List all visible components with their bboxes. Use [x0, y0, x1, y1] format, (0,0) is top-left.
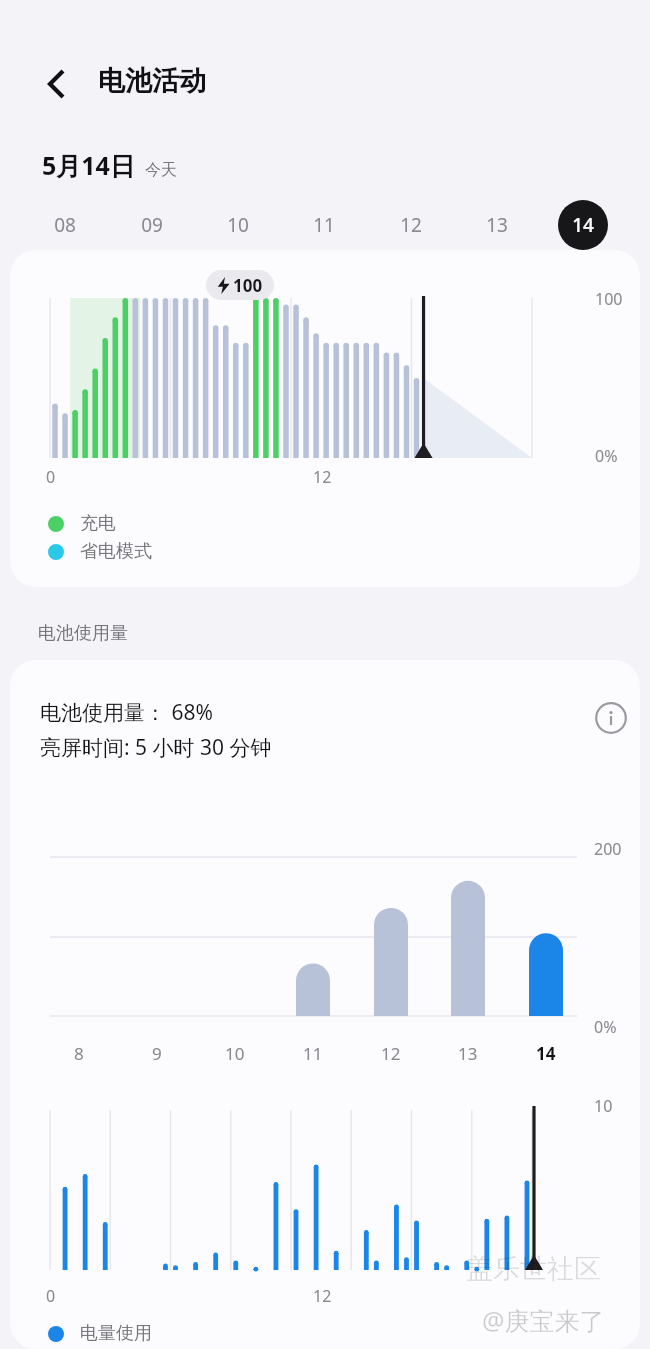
- staticText: 0%: [594, 1016, 617, 1038]
- staticText: 盖乐世社区: [466, 1252, 601, 1286]
- staticText: 电池活动: [98, 64, 206, 98]
- staticText: 省电模式: [80, 540, 152, 563]
- staticText: 100: [595, 288, 623, 310]
- staticText: 12: [313, 466, 332, 488]
- button[interactable]: 11: [299, 200, 349, 250]
- staticText: 10: [227, 212, 249, 238]
- button[interactable]: 14: [558, 200, 608, 250]
- staticText: 5月14日: [42, 148, 135, 182]
- staticText: 亮屏时间: 5 小时 30 分钟: [40, 733, 272, 762]
- staticText: 12: [313, 1285, 332, 1307]
- staticText: 0: [46, 466, 56, 488]
- staticText: 12: [381, 1042, 401, 1065]
- staticText: 14: [536, 1042, 556, 1065]
- button[interactable]: 100: [10, 250, 640, 587]
- button[interactable]: 13: [472, 200, 522, 250]
- staticText: 10: [594, 1095, 613, 1117]
- staticText: 200: [594, 838, 622, 860]
- staticText: 8: [74, 1042, 84, 1065]
- staticText: 9: [152, 1042, 162, 1065]
- staticText: 充电: [80, 512, 116, 535]
- staticText: 11: [303, 1042, 323, 1065]
- staticText: 11: [313, 212, 335, 238]
- staticText: 0: [46, 1285, 56, 1307]
- staticText: 电池使用量： 68%: [40, 698, 213, 727]
- button[interactable]: 09: [127, 200, 177, 250]
- button[interactable]: 08: [40, 200, 90, 250]
- staticText: 13: [458, 1042, 478, 1065]
- button[interactable]: 10: [213, 200, 263, 250]
- staticText: 13: [486, 212, 508, 238]
- staticText: 12: [400, 212, 422, 238]
- staticText: 今天: [145, 160, 177, 180]
- staticText: 100: [233, 274, 263, 297]
- staticText: 0%: [595, 445, 618, 467]
- button[interactable]: 12: [386, 200, 436, 250]
- staticText: 08: [54, 212, 76, 238]
- button[interactable]: Back: [34, 62, 78, 106]
- staticText: 09: [141, 212, 163, 238]
- staticText: 10: [225, 1042, 245, 1065]
- staticText: 电量使用: [80, 1322, 152, 1345]
- staticText: @庚宝来了: [482, 1303, 605, 1337]
- button[interactable]: Information: [581, 688, 640, 748]
- staticText: 14: [572, 212, 594, 238]
- staticText: 电池使用量: [38, 622, 128, 645]
